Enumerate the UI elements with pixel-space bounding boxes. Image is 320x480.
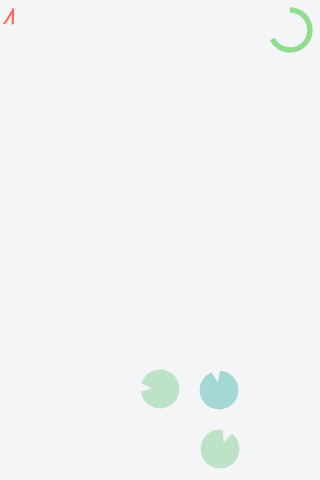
button[interactable]: App logo (1, 1, 21, 31)
button[interactable]: Category one (139, 368, 181, 410)
button[interactable]: Category three (199, 428, 241, 470)
button[interactable]: Loading (266, 6, 314, 54)
button[interactable]: Category two (198, 369, 240, 411)
